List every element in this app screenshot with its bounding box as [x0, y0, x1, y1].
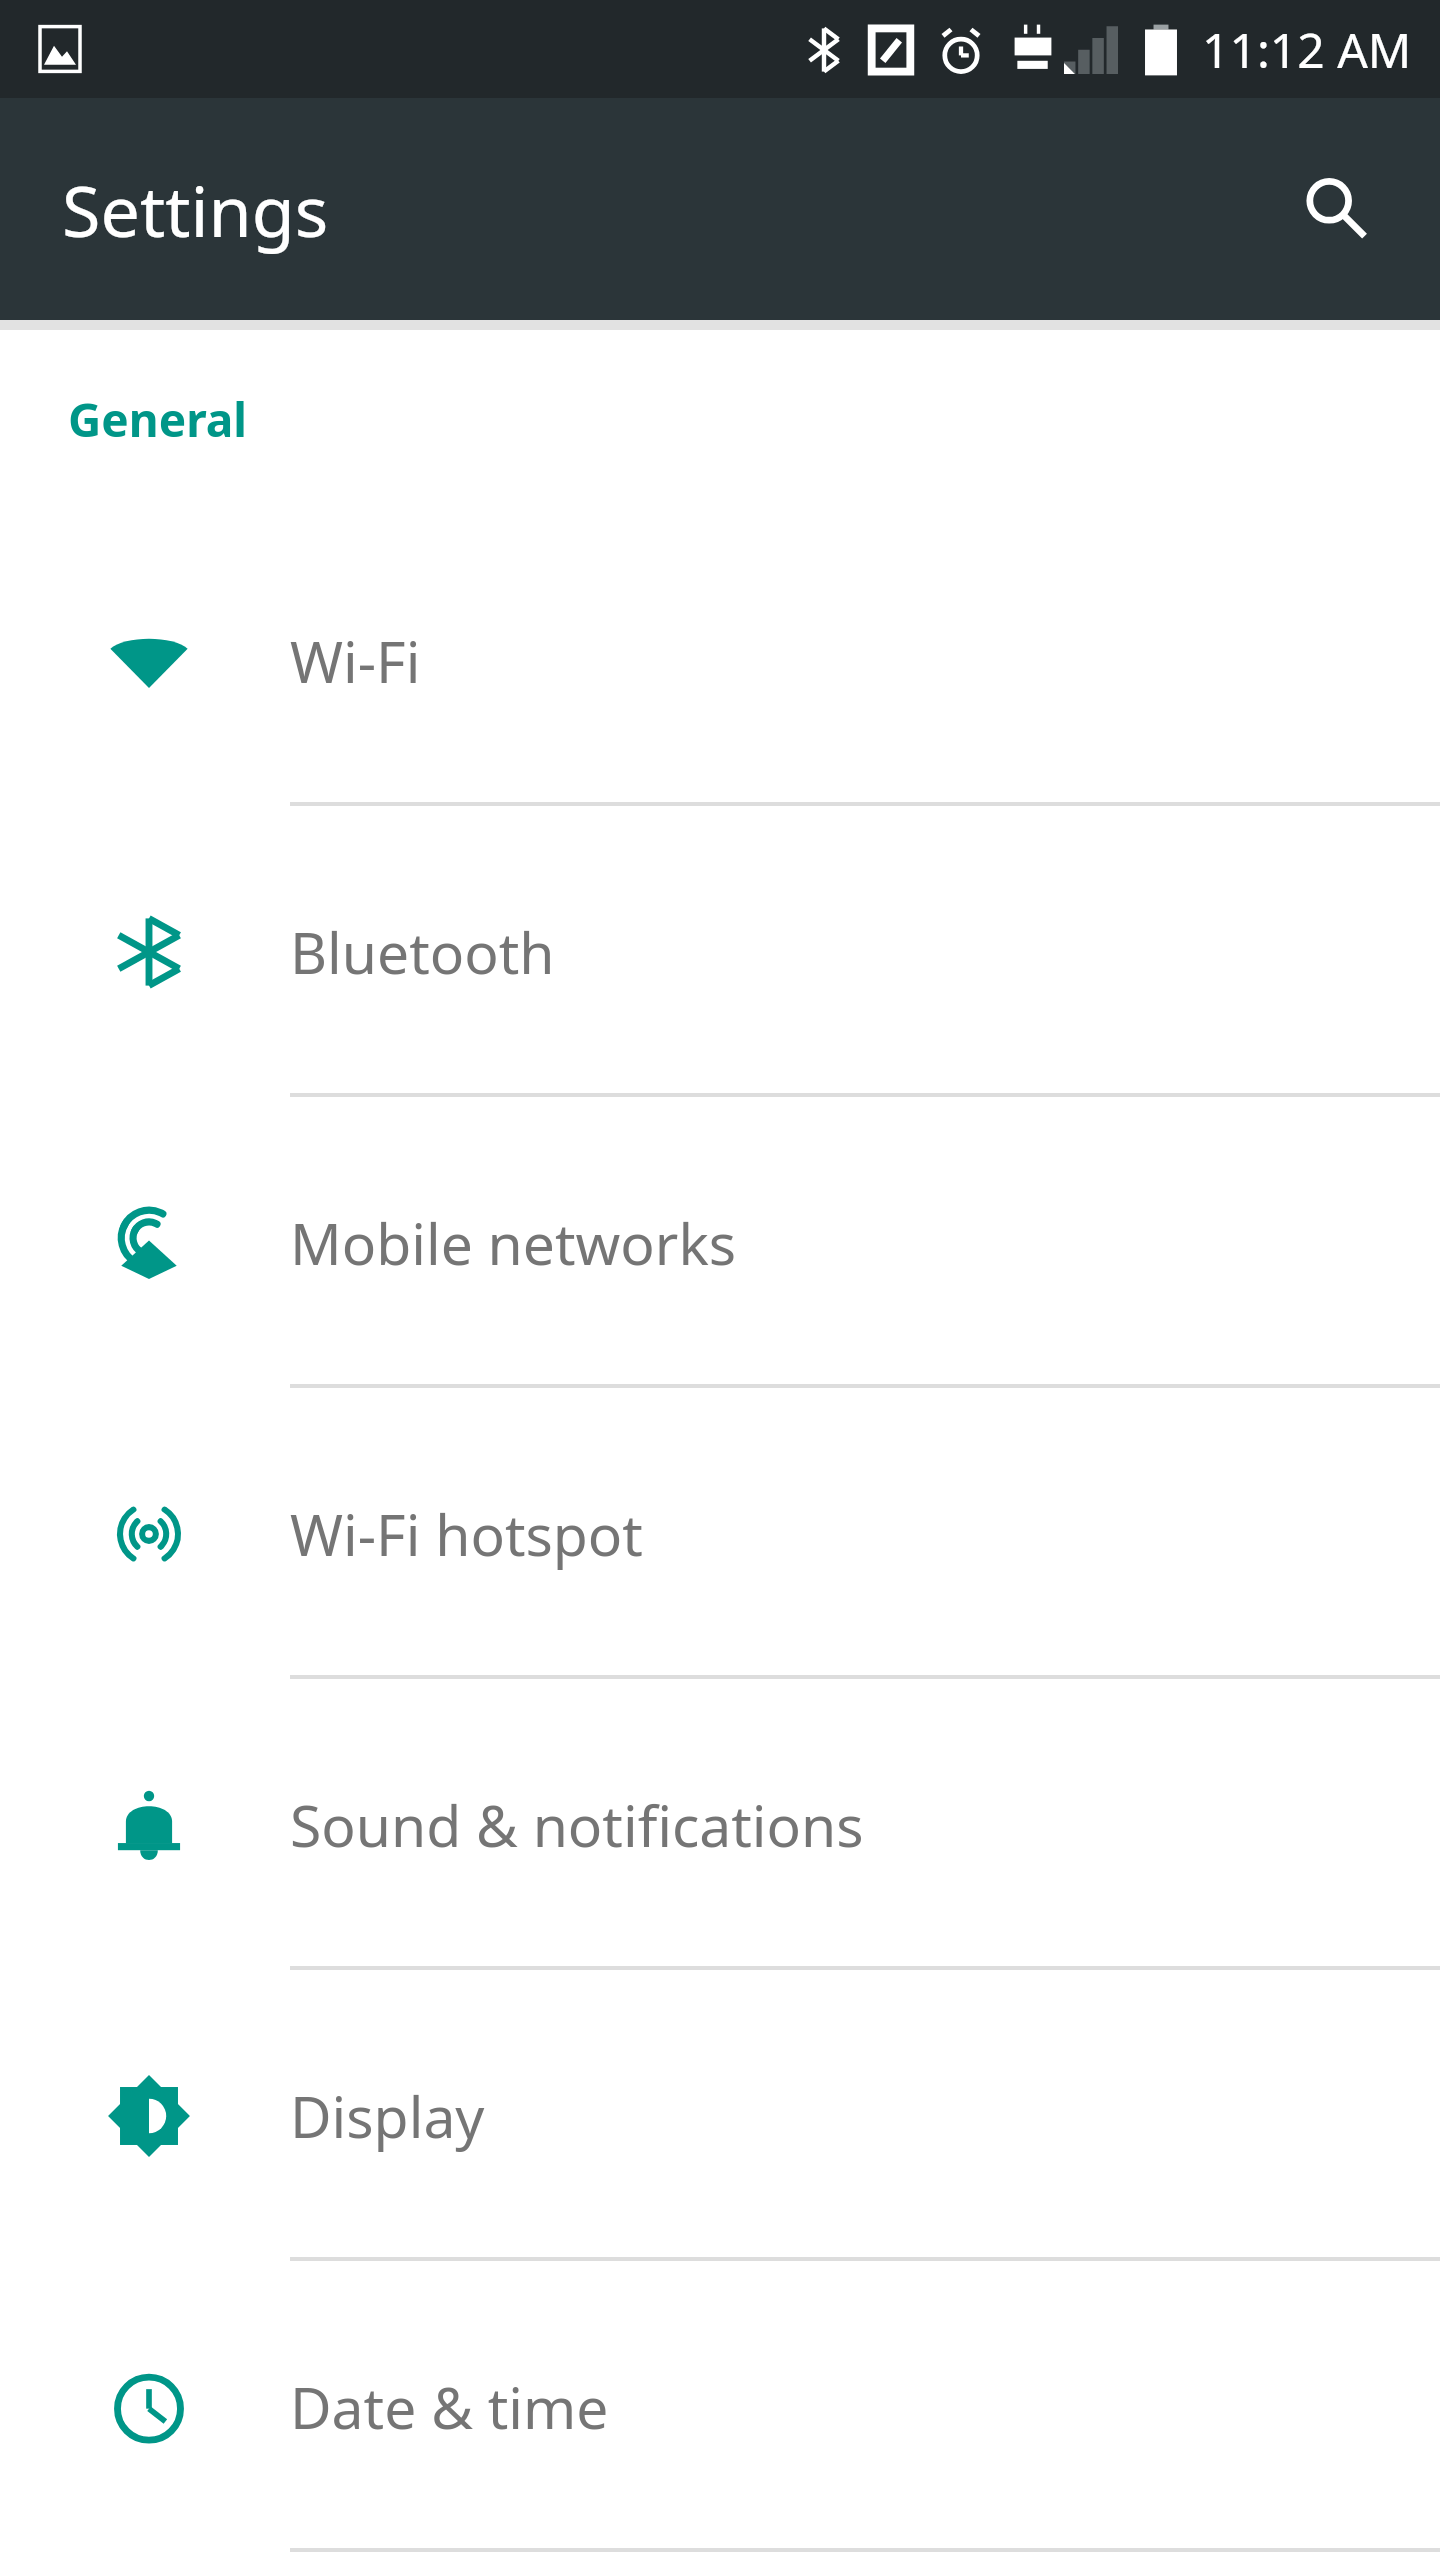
button[interactable]: Date & time [0, 2261, 1440, 2552]
staticText: Settings [62, 162, 329, 257]
staticText: Display [290, 2077, 485, 2155]
staticText: Mobile networks [290, 1204, 737, 1282]
staticText: Date & time [290, 2368, 609, 2446]
button[interactable]: Mobile networks [0, 1097, 1440, 1388]
button[interactable]: Wi-Fi hotspot [0, 1388, 1440, 1679]
staticText: 11:12 AM [1202, 17, 1412, 82]
staticText: Wi-Fi hotspot [290, 1495, 643, 1573]
button[interactable]: Search [1276, 149, 1396, 269]
button[interactable]: Sound & notifications [0, 1679, 1440, 1970]
staticText: Bluetooth [290, 913, 555, 991]
staticText: Wi-Fi [290, 622, 421, 700]
button[interactable]: Display [0, 1970, 1440, 2261]
button[interactable]: Wi-Fi [0, 515, 1440, 806]
staticText: General [68, 388, 248, 451]
button[interactable]: Bluetooth [0, 806, 1440, 1097]
staticText: Sound & notifications [290, 1786, 864, 1864]
